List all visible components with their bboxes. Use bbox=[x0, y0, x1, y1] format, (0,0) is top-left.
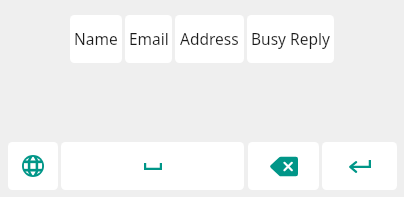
button[interactable]: Email bbox=[125, 15, 172, 63]
button[interactable]: Name bbox=[70, 15, 122, 63]
staticText: Email bbox=[129, 28, 169, 49]
button[interactable]: Address bbox=[175, 15, 244, 63]
button[interactable]: Enter bbox=[322, 142, 397, 190]
staticText: Busy Reply bbox=[251, 28, 330, 49]
button[interactable]: Switch language bbox=[8, 142, 58, 190]
button[interactable]: Busy Reply bbox=[247, 15, 334, 63]
button[interactable]: Space bbox=[61, 142, 244, 190]
staticText: Name bbox=[74, 28, 118, 49]
button[interactable]: Backspace bbox=[248, 142, 319, 190]
staticText: Address bbox=[180, 28, 239, 49]
